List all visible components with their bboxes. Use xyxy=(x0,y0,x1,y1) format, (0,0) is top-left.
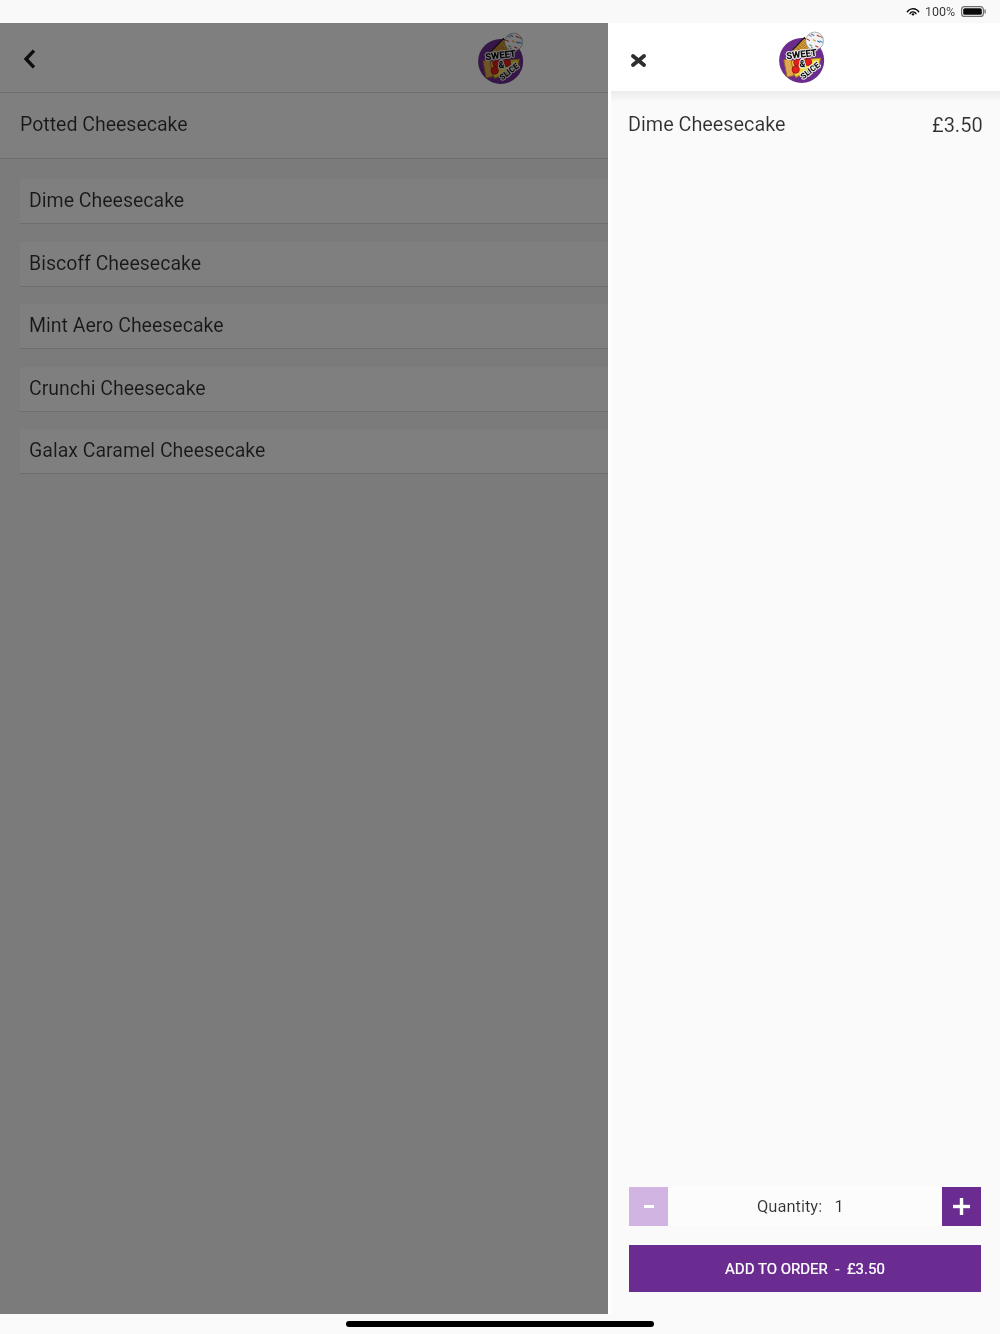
staticText: Crunchi Cheesecake xyxy=(29,377,206,400)
button[interactable]: Back xyxy=(7,36,53,82)
button[interactable]: Decrease quantity xyxy=(629,1187,668,1226)
staticText: Biscoff Cheesecake xyxy=(29,252,202,275)
button[interactable]: Increase quantity xyxy=(942,1187,981,1226)
staticText: £3.50 xyxy=(932,113,983,136)
staticText: Mint Aero Cheesecake xyxy=(29,314,224,337)
button[interactable]: Biscoff Cheesecake xyxy=(20,242,980,286)
button[interactable]: Crunchi Cheesecake xyxy=(20,367,980,411)
button[interactable]: Galax Caramel Cheesecake xyxy=(20,429,980,473)
staticText: Dime Cheesecake xyxy=(628,113,786,136)
staticText: Dime Cheesecake xyxy=(29,189,185,212)
staticText: Quantity: 1 xyxy=(757,1197,844,1216)
staticText: 100% xyxy=(925,4,956,19)
button[interactable]: Mint Aero Cheesecake xyxy=(20,304,980,348)
staticText: ADD TO ORDER - £3.50 xyxy=(725,1260,885,1278)
button[interactable]: ADD TO ORDER - £3.50 xyxy=(629,1245,981,1292)
staticText: Potted Cheesecake xyxy=(20,113,188,136)
button[interactable]: Dime Cheesecake xyxy=(20,179,980,223)
staticText: Galax Caramel Cheesecake xyxy=(29,439,266,462)
button[interactable]: Close xyxy=(615,37,661,83)
